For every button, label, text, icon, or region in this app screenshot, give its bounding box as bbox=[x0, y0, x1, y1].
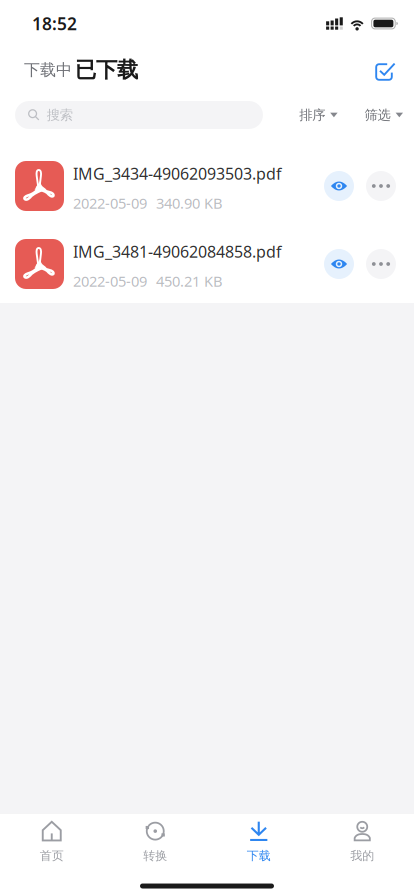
staticText: 我的 bbox=[350, 848, 374, 863]
staticText: 排序 bbox=[299, 107, 325, 123]
staticText: 下载 bbox=[247, 848, 271, 863]
button[interactable]: 预览 bbox=[324, 171, 354, 201]
staticText: 已下载 bbox=[75, 57, 138, 83]
button[interactable]: 下载 bbox=[207, 817, 310, 867]
staticText: 搜索 bbox=[47, 107, 73, 123]
staticText: 下载中 bbox=[24, 60, 72, 80]
button[interactable]: 我的 bbox=[310, 817, 414, 867]
button[interactable]: 已下载 bbox=[75, 55, 138, 85]
staticText: IMG_3434-49062093503.pdf bbox=[73, 163, 282, 184]
button[interactable]: 更多 bbox=[366, 249, 396, 279]
staticText: 340.90 KB bbox=[156, 193, 223, 213]
button[interactable]: 多选 bbox=[369, 55, 399, 85]
staticText: 18:52 bbox=[32, 12, 77, 35]
button[interactable]: 首页 bbox=[0, 817, 103, 867]
button[interactable]: 更多 bbox=[366, 171, 396, 201]
button[interactable]: 搜索 bbox=[15, 101, 263, 139]
button[interactable]: 预览 bbox=[324, 249, 354, 279]
button[interactable]: 排序 bbox=[299, 101, 338, 139]
staticText: 筛选 bbox=[365, 107, 391, 123]
staticText: 2022-05-09 bbox=[73, 193, 147, 213]
staticText: 转换 bbox=[143, 848, 167, 863]
staticText: 首页 bbox=[40, 848, 64, 863]
staticText: 450.21 KB bbox=[156, 271, 223, 291]
button[interactable]: 转换 bbox=[103, 817, 207, 867]
button[interactable]: 下载中 bbox=[24, 55, 72, 85]
button[interactable]: 筛选 bbox=[365, 101, 403, 139]
staticText: 2022-05-09 bbox=[73, 271, 147, 291]
staticText: IMG_3481-49062084858.pdf bbox=[73, 241, 282, 262]
